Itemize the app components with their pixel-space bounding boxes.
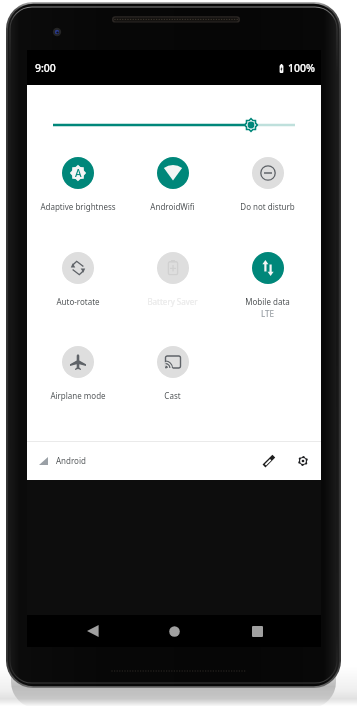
staticText: Do not disturb — [240, 201, 295, 212]
staticText: Android — [56, 455, 86, 466]
button[interactable]: Recents — [241, 615, 273, 647]
button[interactable]: AndroidWifi — [125, 157, 220, 212]
staticText: Airplane mode — [50, 390, 106, 401]
staticText: LTE — [261, 308, 274, 319]
button[interactable]: Back — [77, 615, 109, 647]
staticText: Cast — [164, 390, 181, 401]
button[interactable]: A — [30, 157, 125, 212]
button[interactable]: Do not disturb — [220, 157, 315, 212]
staticText: A — [75, 166, 82, 180]
button[interactable]: Cast — [125, 346, 220, 401]
button[interactable]: Home — [158, 615, 190, 647]
staticText: Auto-rotate — [56, 296, 100, 307]
button[interactable]: Auto-rotate — [30, 252, 125, 307]
button[interactable]: Edit — [257, 449, 281, 473]
staticText: AndroidWifi — [150, 201, 195, 212]
staticText: 9:00 — [35, 61, 56, 75]
button[interactable]: Settings — [291, 449, 315, 473]
button[interactable]: Airplane mode — [30, 346, 125, 401]
button[interactable]: Battery Saver — [125, 252, 220, 307]
staticText: Battery Saver — [147, 296, 198, 307]
staticText: Mobile data — [245, 296, 290, 307]
button[interactable]: Mobile data — [220, 252, 315, 319]
staticText: Adaptive brightness — [40, 201, 116, 212]
staticText: 100% — [288, 61, 315, 75]
